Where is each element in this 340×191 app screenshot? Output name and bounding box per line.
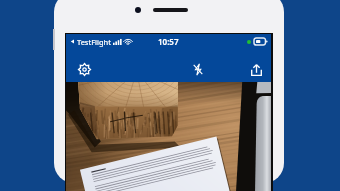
- button[interactable]: Share: [243, 57, 269, 82]
- staticText: TestFlight: [77, 37, 111, 47]
- button[interactable]: Settings: [71, 57, 97, 82]
- staticText: 10:57: [158, 36, 179, 47]
- button[interactable]: Flash off: [185, 57, 211, 82]
